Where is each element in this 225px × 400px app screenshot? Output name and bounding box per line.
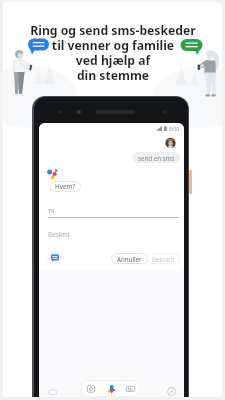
button[interactable]: Bekræft [147,253,180,264]
staticText: Annuller [117,255,142,263]
button[interactable]: Messages [47,250,62,265]
button[interactable]: Explore [165,385,177,397]
button[interactable]: Keyboard [46,385,58,397]
staticText: send en sms [138,154,175,162]
staticText: 8:00 [169,125,180,132]
button[interactable]: Annuller [111,253,148,264]
staticText: Til [48,207,55,215]
button[interactable]: Keyboard input [125,383,136,394]
button[interactable]: Voice search [105,383,117,395]
staticText: Besked [48,230,70,239]
staticText: Bekræft [152,255,175,263]
button[interactable]: Hvem? [50,181,81,192]
staticText: Ring og send sms-beskeder til venner og … [30,22,196,84]
staticText: Hvem? [55,182,76,191]
button[interactable]: Google Lens [85,383,96,394]
